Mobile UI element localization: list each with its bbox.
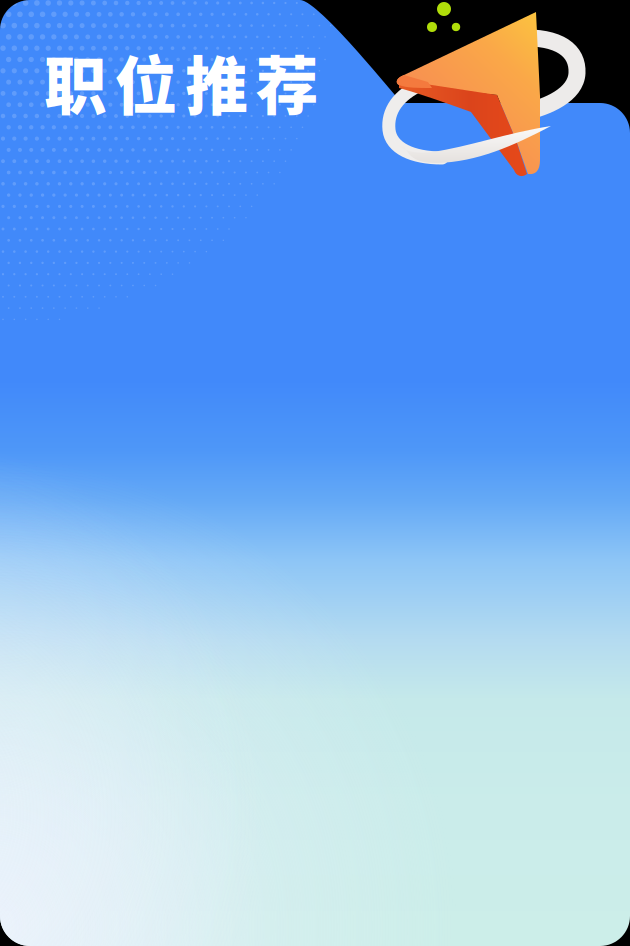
staticText: 职位推荐: [44, 36, 319, 127]
